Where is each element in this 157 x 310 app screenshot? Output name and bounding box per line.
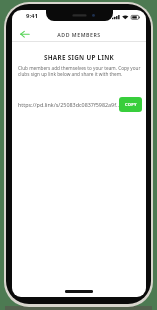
staticText: 9:41 xyxy=(26,12,38,20)
staticText: Club members add themselves to your team… xyxy=(18,65,141,77)
staticText: COPY xyxy=(125,102,137,107)
button[interactable]: https://pd.link/s/25083dc0837f5982a9f... xyxy=(14,97,117,112)
staticText: ADD MEMBERS xyxy=(12,31,146,38)
button[interactable] xyxy=(20,31,30,38)
staticText: https://pd.link/s/25083dc0837f5982a9f... xyxy=(18,101,121,108)
staticText: SHARE SIGN UP LINK xyxy=(12,53,146,62)
button[interactable]: COPY xyxy=(119,97,142,112)
